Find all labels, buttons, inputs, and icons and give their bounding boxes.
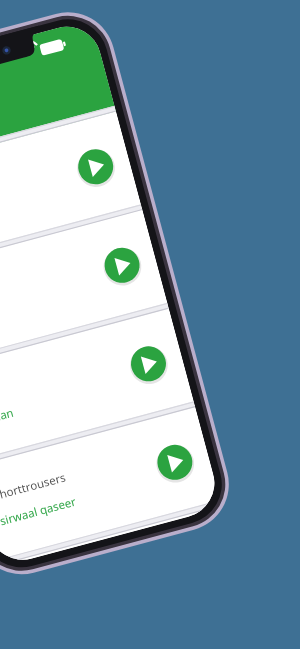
- button[interactable]: Clothing phrasebook list: [0, 0, 300, 649]
